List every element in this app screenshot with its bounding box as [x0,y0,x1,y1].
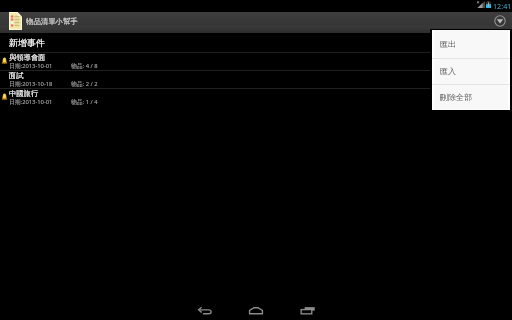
staticText: 匯入 [440,66,456,76]
staticText: 與領導會面 [9,53,46,62]
button[interactable]: 新增事件 [0,33,512,53]
staticText: 日期:2013-10-18 [9,80,53,88]
button[interactable]: More options [492,13,507,28]
button[interactable]: 中國旅行 [0,89,512,107]
staticText: 物品: 1 / 4 [71,98,98,106]
button[interactable]: 與領導會面 [0,53,512,71]
button[interactable]: 匯出 [432,30,510,58]
button[interactable]: 匯入 [432,58,510,83]
staticText: 物品: 2 / 2 [71,80,98,88]
staticText: 新增事件 [9,37,45,48]
staticText: 日期:2013-10-01 [9,62,53,70]
staticText: 刪除全部 [440,92,472,102]
button[interactable]: Recent apps [286,290,330,320]
staticText: 匯出 [440,39,456,49]
button[interactable]: 面試 [0,71,512,89]
staticText: 12:41 [493,1,512,11]
staticText: 物品清單小幫手 [26,17,78,26]
staticText: 中國旅行 [9,89,39,98]
staticText: 物品: 4 / 8 [71,62,98,70]
button[interactable]: 刪除全部 [432,84,510,109]
button[interactable]: Back [183,290,227,320]
staticText: 日期:2013-10-01 [9,98,53,106]
button[interactable]: Home [234,290,278,320]
staticText: 面試 [9,71,24,80]
